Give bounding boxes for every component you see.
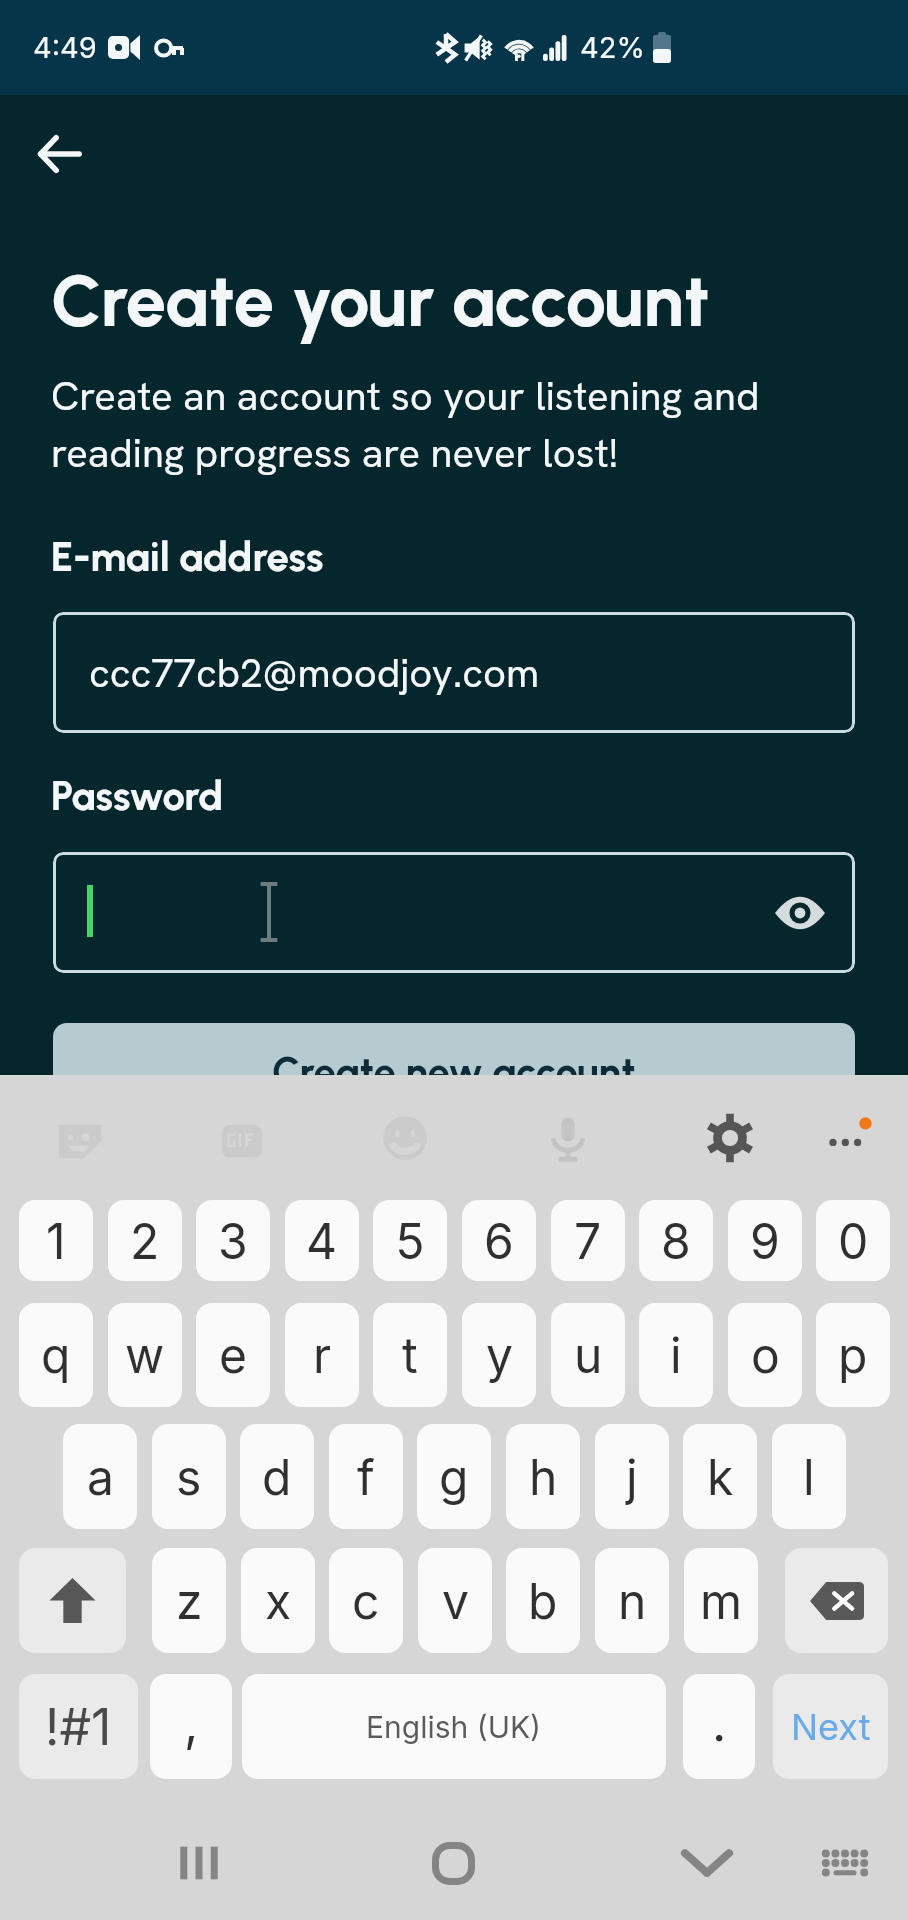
staticText: Next (791, 1705, 871, 1749)
button[interactable]: i (639, 1303, 713, 1407)
button[interactable]: v (418, 1548, 492, 1653)
button[interactable]: d (240, 1424, 314, 1529)
button[interactable]: . (683, 1674, 755, 1779)
staticText: k (707, 1448, 734, 1506)
button[interactable]: b (506, 1548, 580, 1653)
staticText: z (176, 1572, 203, 1630)
button[interactable]: n (595, 1548, 669, 1653)
button[interactable]: 8 (639, 1200, 713, 1281)
button[interactable]: 4 (285, 1200, 359, 1281)
staticText: 4:49 (33, 30, 97, 65)
button[interactable]: 0 (816, 1200, 890, 1281)
staticText: l (803, 1448, 815, 1506)
staticText: g (439, 1448, 469, 1506)
button[interactable]: p (816, 1303, 890, 1407)
button[interactable]: Create new account (53, 1023, 855, 1138)
button[interactable]: q (19, 1303, 93, 1407)
staticText: 6 (484, 1212, 514, 1270)
staticText: s (176, 1448, 202, 1506)
button[interactable]: Next (773, 1674, 888, 1779)
staticText: j (626, 1448, 638, 1506)
staticText: f (357, 1448, 375, 1506)
button[interactable]: 7 (551, 1200, 625, 1281)
staticText: p (838, 1326, 868, 1384)
button[interactable]: Settings (684, 1092, 776, 1184)
staticText: v (442, 1572, 469, 1630)
button[interactable]: Backspace (785, 1548, 888, 1653)
button[interactable]: 9 (728, 1200, 802, 1281)
button[interactable]: t (373, 1303, 447, 1407)
button[interactable]: More options (801, 1092, 893, 1184)
button[interactable]: 3 (196, 1200, 270, 1281)
staticText: u (574, 1326, 603, 1384)
staticText: Create your account (51, 258, 710, 344)
staticText: Password (51, 772, 224, 820)
staticText: h (529, 1448, 558, 1506)
button[interactable]: ccc77cb2@moodjoy.com (53, 612, 855, 733)
staticText: . (712, 1693, 727, 1753)
button[interactable]: 1 (19, 1200, 93, 1281)
button[interactable]: g (417, 1424, 491, 1529)
button[interactable]: Symbols (19, 1674, 138, 1779)
button[interactable]: o (728, 1303, 802, 1407)
staticText: c (352, 1572, 380, 1630)
staticText: 8 (661, 1212, 691, 1270)
staticText: t (402, 1326, 418, 1384)
staticText: 7 (574, 1212, 602, 1270)
button[interactable]: 6 (462, 1200, 536, 1281)
staticText: 5 (396, 1212, 425, 1270)
button[interactable]: Back (23, 118, 95, 190)
button[interactable]: Hide keyboard (662, 1818, 752, 1908)
staticText: 0 (838, 1212, 869, 1270)
button[interactable]: GIF (196, 1092, 288, 1184)
staticText: English (UK) (366, 1709, 542, 1745)
staticText: e (219, 1326, 247, 1384)
staticText: Create an account so your listening and … (51, 370, 760, 479)
button[interactable]: 5 (373, 1200, 447, 1281)
button[interactable]: y (462, 1303, 536, 1407)
button[interactable]: f (329, 1424, 403, 1529)
staticText: m (700, 1572, 743, 1630)
staticText: d (262, 1448, 292, 1506)
staticText: 4 (306, 1212, 338, 1270)
button[interactable]: r (285, 1303, 359, 1407)
staticText: E-mail address (51, 533, 324, 581)
button[interactable]: Stickers (34, 1092, 126, 1184)
button[interactable]: c (329, 1548, 403, 1653)
staticText: , (184, 1693, 199, 1753)
button[interactable]: x (241, 1548, 315, 1653)
button[interactable]: Home (408, 1818, 498, 1908)
staticText: ccc77cb2@moodjoy.com (89, 647, 540, 699)
staticText: o (751, 1326, 780, 1384)
button[interactable]: Recents (154, 1818, 244, 1908)
button[interactable]: , (150, 1674, 232, 1779)
button[interactable]: z (152, 1548, 226, 1653)
button[interactable]: 2 (108, 1200, 182, 1281)
button[interactable]: m (684, 1548, 758, 1653)
button[interactable]: Voice input (522, 1092, 614, 1184)
staticText: 2 (130, 1212, 160, 1270)
staticText: 9 (750, 1212, 780, 1270)
button[interactable]: j (595, 1424, 669, 1529)
button[interactable]: e (196, 1303, 270, 1407)
staticText: 3 (218, 1212, 248, 1270)
button[interactable]: Switch keyboard (800, 1818, 890, 1908)
button[interactable]: w (108, 1303, 182, 1407)
staticText: q (41, 1326, 71, 1384)
button[interactable]: a (63, 1424, 137, 1529)
button[interactable]: Show password (769, 882, 831, 944)
button[interactable]: u (551, 1303, 625, 1407)
staticText: x (265, 1572, 292, 1630)
button[interactable]: Show password (53, 852, 855, 973)
button[interactable]: k (683, 1424, 757, 1529)
staticText: r (313, 1326, 332, 1384)
button[interactable]: Space (242, 1674, 666, 1779)
button[interactable]: l (772, 1424, 846, 1529)
button[interactable]: Shift (19, 1548, 126, 1653)
button[interactable]: Emoji (359, 1092, 451, 1184)
staticText: 42% (580, 30, 645, 65)
button[interactable]: s (152, 1424, 226, 1529)
button[interactable]: h (506, 1424, 580, 1529)
staticText: 1 (46, 1212, 66, 1270)
staticText: b (528, 1572, 558, 1630)
